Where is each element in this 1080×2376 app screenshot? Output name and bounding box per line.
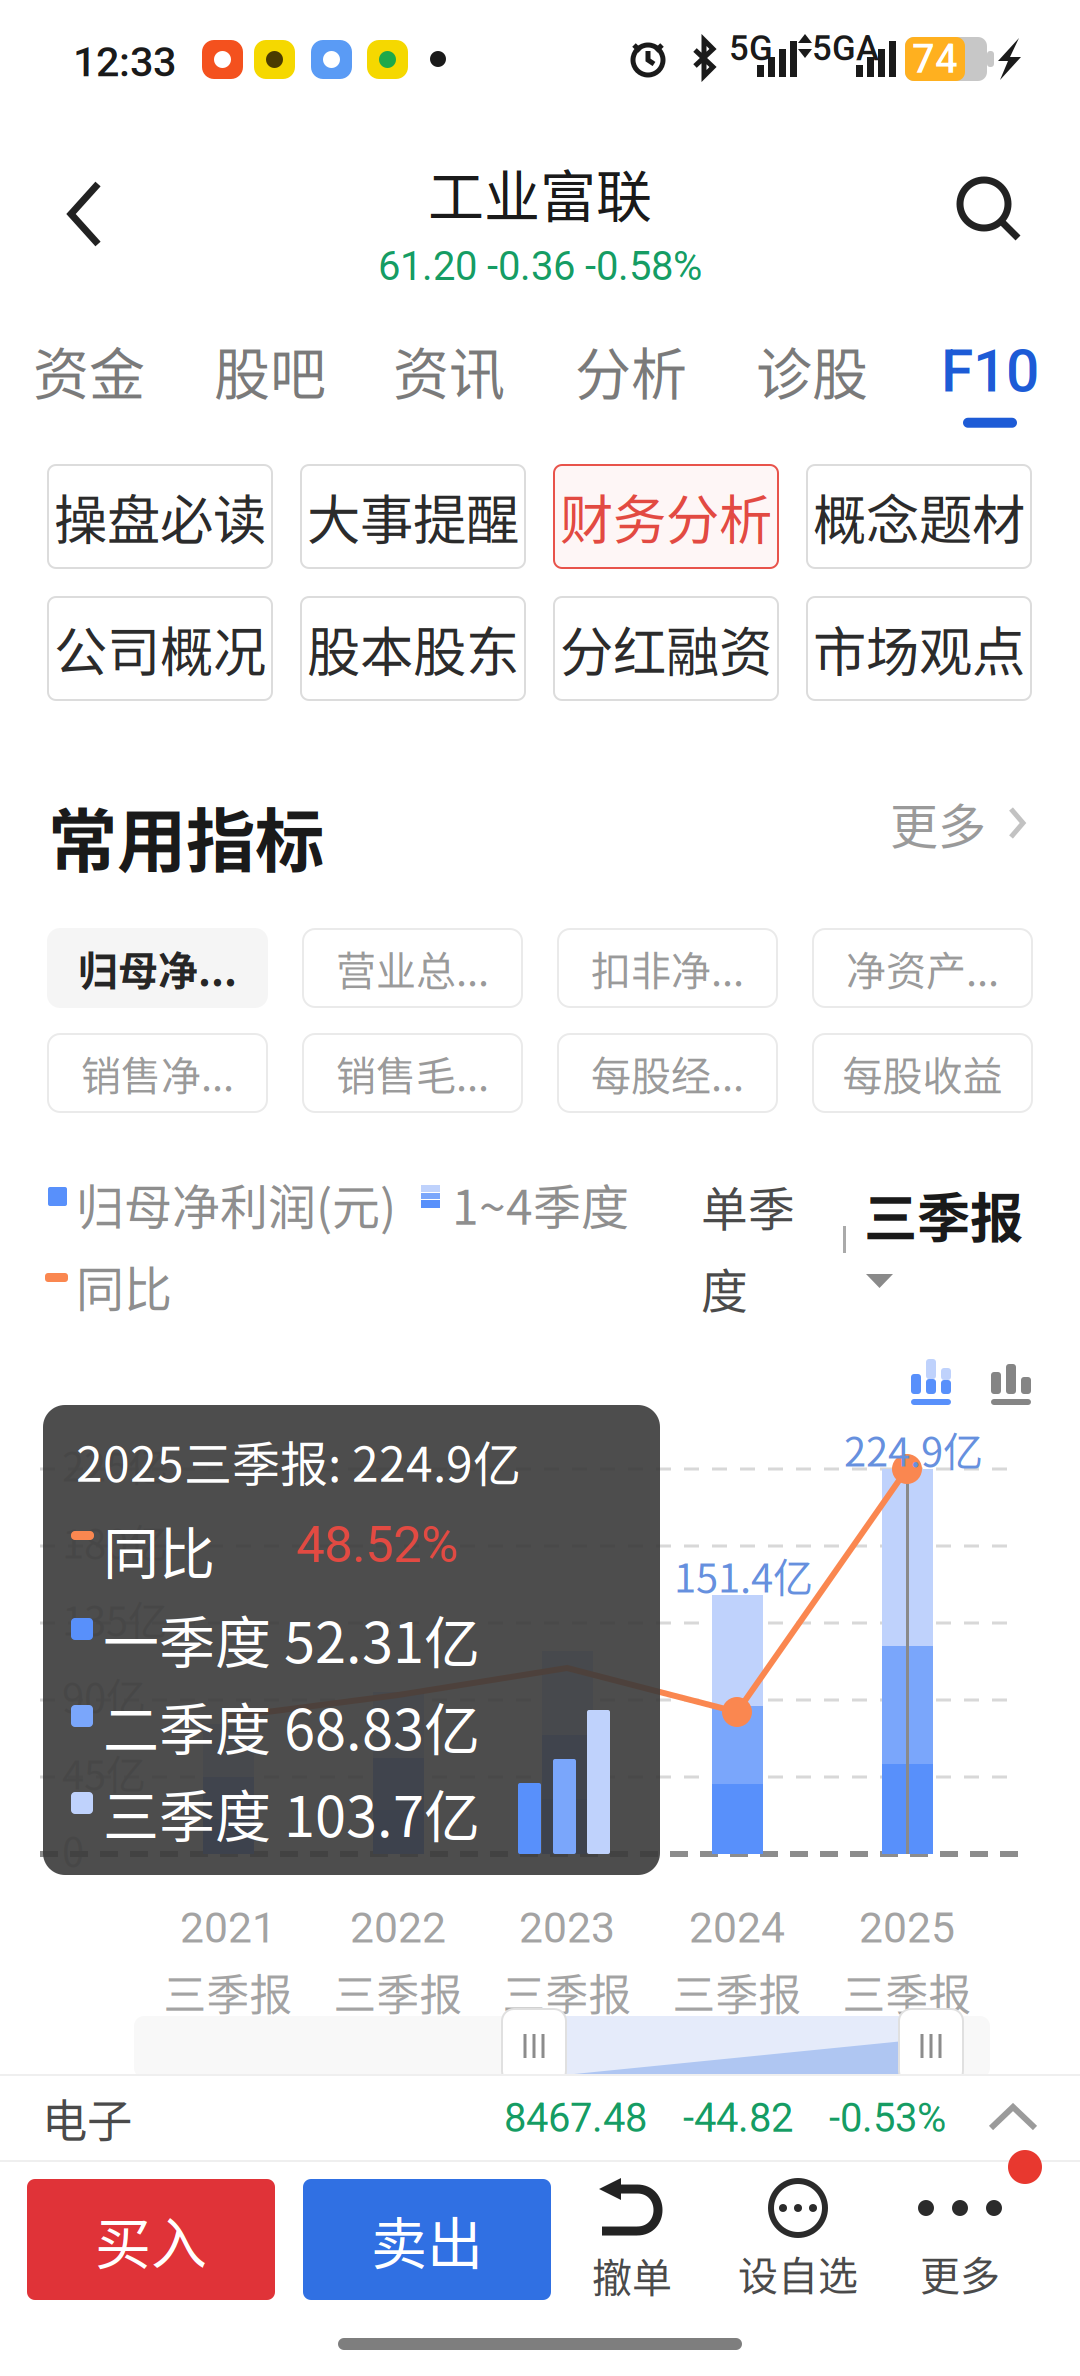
staticText: 卖出	[371, 2199, 483, 2280]
button[interactable]: 卖出	[303, 2179, 551, 2300]
staticText: 2023	[519, 1903, 615, 1953]
button[interactable]: 股本股东	[301, 597, 525, 700]
button[interactable]: 分红融资	[554, 597, 778, 700]
staticText: 45亿	[62, 1743, 146, 1801]
staticText: 151.4亿	[674, 1546, 813, 1604]
button[interactable]: 撤单	[562, 2178, 702, 2308]
staticText: 常用指标	[48, 786, 324, 886]
staticText: 归母净...	[78, 939, 237, 997]
staticText: 公司概况	[54, 610, 266, 687]
staticText: 归母净利润(元)	[76, 1169, 396, 1238]
button[interactable]: 三季报	[842, 1176, 1002, 1326]
staticText: 电子	[42, 2085, 132, 2151]
staticText: 销售毛...	[336, 1044, 489, 1102]
staticText: 更多	[920, 2244, 1000, 2302]
button[interactable]: Search	[935, 155, 1045, 265]
button[interactable]: 营业总...	[303, 929, 522, 1007]
button[interactable]: 净资产...	[813, 929, 1032, 1007]
staticText: 5GA	[812, 28, 879, 69]
staticText: -44.82	[683, 2095, 793, 2141]
staticText: 三季报	[672, 1961, 801, 2023]
staticText: 同比	[76, 1251, 172, 1320]
staticText: 分红融资	[560, 610, 772, 687]
button[interactable]: 公司概况	[48, 597, 272, 700]
staticText: 概念题材	[813, 478, 1025, 555]
button[interactable]: 归母净...	[48, 929, 267, 1007]
staticText: 操盘必读	[54, 478, 266, 555]
staticText: 5G	[729, 28, 773, 69]
staticText: 营业总...	[336, 939, 489, 997]
staticText: 每股经...	[591, 1044, 744, 1102]
staticText: 225亿	[62, 1435, 168, 1493]
button[interactable]: 股吧	[185, 320, 355, 420]
button[interactable]: 资金	[4, 320, 174, 420]
staticText: 2024	[689, 1903, 785, 1953]
staticText: 撤单	[592, 2246, 672, 2304]
button[interactable]: Bar chart	[976, 1352, 1046, 1412]
staticText: 2025	[859, 1903, 955, 1953]
button[interactable]: 分析	[546, 320, 716, 420]
staticText: 每股收益	[842, 1044, 1002, 1102]
staticText: 61.20 -0.36 -0.58%	[378, 243, 702, 290]
staticText: 三季报	[842, 1961, 971, 2023]
button[interactable]: 设自选	[714, 2178, 882, 2308]
staticText: 2021	[180, 1903, 276, 1953]
button[interactable]: 市场观点	[807, 597, 1031, 700]
button[interactable]: Back	[31, 159, 141, 269]
staticText: -0.53%	[829, 2095, 946, 2141]
button[interactable]: 每股经...	[558, 1034, 777, 1112]
button[interactable]: 更多	[890, 788, 1026, 858]
button[interactable]: 每股收益	[813, 1034, 1032, 1112]
staticText: 股本股东	[307, 610, 519, 687]
staticText: 1~4季度	[452, 1169, 629, 1238]
button[interactable]: 诊股	[727, 320, 897, 420]
staticText: 净资产...	[846, 939, 999, 997]
staticText: 三季报	[163, 1961, 292, 2023]
button[interactable]: 操盘必读	[48, 465, 272, 568]
button[interactable]: 大事提醒	[301, 465, 525, 568]
button[interactable]: 更多	[890, 2178, 1030, 2308]
staticText: 股吧	[214, 329, 326, 411]
button[interactable]: 销售毛...	[303, 1034, 522, 1112]
staticText: 单季	[701, 1172, 795, 1240]
staticText: 135亿	[62, 1589, 168, 1647]
staticText: 三季报	[864, 1176, 1023, 1253]
staticText: 90亿	[62, 1666, 146, 1724]
button[interactable]: 扣非净...	[558, 929, 777, 1007]
staticText: 12:33	[73, 38, 176, 86]
button[interactable]: 资讯	[364, 320, 534, 420]
button[interactable]: 财务分析	[554, 465, 778, 568]
staticText: 一季度 52.31亿	[103, 1598, 480, 1679]
staticText: 三季报	[333, 1961, 462, 2023]
staticText: 8467.48	[504, 2095, 647, 2141]
staticText: F10	[941, 337, 1039, 406]
staticText: 三季度 103.7亿	[103, 1772, 480, 1853]
button[interactable]: Stacked chart	[896, 1352, 966, 1412]
staticText: 市场观点	[813, 610, 1025, 687]
button[interactable]: 买入	[27, 2179, 275, 2300]
staticText: 大事提醒	[307, 478, 519, 555]
staticText: 设自选	[738, 2244, 858, 2302]
staticText: 资讯	[393, 329, 505, 411]
button[interactable]: 单季	[701, 1172, 821, 1322]
staticText: 财务分析	[560, 478, 772, 555]
staticText: 买入	[95, 2199, 207, 2280]
staticText: 224.9亿	[844, 1420, 983, 1478]
staticText: 同比	[103, 1509, 215, 1590]
staticText: 二季度 68.83亿	[103, 1685, 480, 1766]
staticText: 资金	[33, 329, 145, 411]
button[interactable]: 销售净...	[48, 1034, 267, 1112]
staticText: 2025三季报: 224.9亿	[76, 1426, 521, 1495]
staticText: 扣非净...	[591, 939, 744, 997]
staticText: 工业富联	[428, 152, 652, 233]
staticText: 48.52%	[296, 1515, 458, 1574]
button[interactable]: F10	[915, 337, 1065, 447]
button[interactable]: 电子	[0, 2076, 1080, 2160]
button[interactable]: 概念题材	[807, 465, 1031, 568]
staticText: 三季报	[502, 1961, 631, 2023]
staticText: 诊股	[756, 329, 868, 411]
staticText: 销售净...	[81, 1044, 234, 1102]
staticText: 分析	[575, 329, 687, 411]
staticText: 180亿	[62, 1512, 168, 1570]
staticText: 0	[62, 1820, 84, 1878]
